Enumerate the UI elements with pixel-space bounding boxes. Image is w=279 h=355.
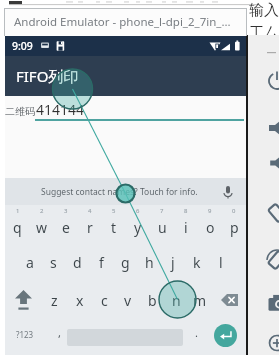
staticText: z — [51, 291, 58, 310]
button[interactable]: k — [185, 243, 209, 281]
staticText: u — [158, 218, 167, 237]
staticText: q — [13, 218, 22, 237]
staticText: 9 — [208, 207, 212, 215]
button[interactable]: FIFO列印 — [5, 56, 246, 96]
button[interactable]: Voice input — [220, 184, 236, 200]
button[interactable]: d — [65, 243, 89, 281]
button[interactable]: x — [67, 281, 92, 319]
staticText: , — [58, 325, 61, 340]
staticText: 输入 — [249, 1, 279, 20]
staticText: s — [50, 253, 57, 272]
staticText: 7 — [160, 207, 164, 215]
button[interactable]: m — [188, 281, 212, 319]
staticText: n — [172, 291, 181, 310]
button[interactable]: Screenshot — [266, 292, 279, 314]
button[interactable]: v — [116, 281, 140, 319]
staticText: a — [26, 253, 34, 272]
staticText: r — [87, 218, 93, 237]
button[interactable]: 7 — [150, 205, 174, 243]
button[interactable]: 8 — [174, 205, 198, 243]
button[interactable]: Volume up — [266, 117, 279, 139]
staticText: FIFO列印 — [16, 66, 79, 86]
staticText: 4 — [88, 207, 92, 215]
staticText: Suggest contact names? Touch for info. — [41, 186, 198, 198]
staticText: p — [230, 218, 239, 237]
staticText: v — [124, 291, 132, 310]
staticText: 0 — [232, 207, 236, 215]
button[interactable]: g — [113, 243, 137, 281]
staticText: 5 — [112, 207, 116, 215]
staticText: l — [219, 253, 223, 272]
staticText: 9:09 — [12, 39, 33, 53]
button[interactable]: c — [92, 281, 116, 319]
staticText: m — [193, 291, 207, 310]
button[interactable]: 1 — [5, 205, 30, 243]
staticText: 3 — [64, 207, 68, 215]
staticText: x — [76, 291, 84, 310]
staticText: y — [134, 218, 142, 237]
staticText: 6 — [136, 207, 140, 215]
button[interactable]: Suggest contact names? Touch for info. — [5, 178, 246, 205]
staticText: o — [206, 218, 215, 237]
staticText: 2 — [40, 207, 44, 215]
staticText: f — [99, 253, 104, 272]
button[interactable]: 414144 — [36, 100, 85, 119]
button[interactable]: 4 — [78, 205, 102, 243]
button[interactable]: a — [18, 243, 41, 281]
staticText: b — [148, 291, 157, 310]
staticText: t — [111, 218, 117, 237]
staticText: j — [171, 253, 175, 272]
button[interactable]: , — [49, 319, 69, 355]
staticText: k — [193, 253, 201, 272]
button[interactable]: Shift — [5, 281, 42, 319]
button[interactable]: 9 — [198, 205, 222, 243]
staticText: w — [36, 218, 48, 237]
button[interactable]: l — [209, 243, 233, 281]
staticText: 1 — [16, 207, 20, 215]
button[interactable]: h — [137, 243, 161, 281]
button[interactable]: 0 — [222, 205, 246, 243]
staticText: . — [195, 325, 198, 340]
button[interactable]: 2 — [30, 205, 54, 243]
button[interactable]: Power — [266, 70, 279, 92]
button[interactable]: s — [41, 243, 65, 281]
button[interactable]: Volume down — [266, 152, 279, 174]
button[interactable]: . — [186, 319, 206, 355]
staticText: c — [101, 291, 108, 310]
button[interactable]: f — [89, 243, 113, 281]
staticText: e — [62, 218, 70, 237]
button[interactable]: Enter — [211, 321, 239, 349]
button[interactable]: z — [42, 281, 67, 319]
staticText: 二维码 — [5, 105, 35, 118]
staticText: 8 — [184, 207, 188, 215]
button[interactable]: Backspace — [212, 281, 246, 319]
button[interactable]: n — [164, 281, 188, 319]
staticText: g — [121, 253, 130, 272]
staticText: 工厶 — [249, 24, 279, 43]
button[interactable]: Rotate left — [266, 202, 279, 224]
staticText: ?123 — [16, 329, 34, 340]
button[interactable]: 6 — [126, 205, 150, 243]
button[interactable]: b — [140, 281, 164, 319]
staticText: h — [145, 253, 154, 272]
button[interactable]: 5 — [102, 205, 126, 243]
staticText: i — [184, 218, 188, 237]
button[interactable]: Zoom — [266, 332, 279, 354]
button[interactable]: 3 — [54, 205, 78, 243]
button[interactable]: ?123 — [13, 319, 37, 355]
button[interactable]: Rotate right — [266, 249, 279, 271]
staticText: d — [73, 253, 82, 272]
staticText: Android Emulator - phone_l-dpi_2_7in_... — [14, 14, 231, 30]
button[interactable]: j — [161, 243, 185, 281]
